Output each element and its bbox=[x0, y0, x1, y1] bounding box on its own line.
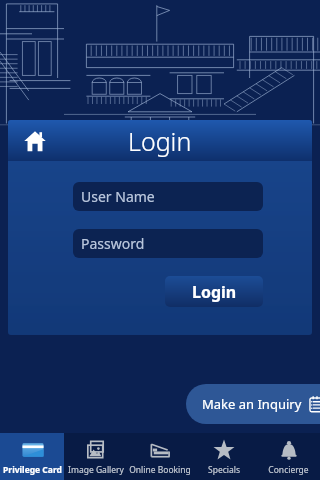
button[interactable]: Privilege Card bbox=[0, 433, 64, 480]
button[interactable]: Password bbox=[73, 229, 263, 258]
button[interactable]: User Name bbox=[73, 182, 263, 211]
staticText: Login bbox=[128, 124, 192, 158]
button[interactable]: Specials bbox=[192, 433, 256, 480]
staticText: Concierge bbox=[268, 464, 309, 476]
button[interactable]: Home bbox=[16, 122, 54, 160]
staticText: Password bbox=[81, 234, 145, 253]
button[interactable]: Login bbox=[165, 276, 263, 307]
button[interactable]: Concierge bbox=[256, 433, 320, 480]
staticText: Online Booking bbox=[129, 464, 191, 476]
button[interactable]: Image Gallery bbox=[64, 433, 128, 480]
button[interactable]: Make an Inquiry bbox=[186, 384, 320, 424]
staticText: Login bbox=[192, 281, 237, 303]
staticText: Privilege Card bbox=[3, 464, 62, 476]
staticText: User Name bbox=[81, 187, 155, 206]
staticText: Image Gallery bbox=[68, 464, 124, 476]
staticText: Make an Inquiry bbox=[202, 395, 302, 413]
staticText: Specials bbox=[208, 464, 240, 476]
button[interactable]: Online Booking bbox=[128, 433, 192, 480]
